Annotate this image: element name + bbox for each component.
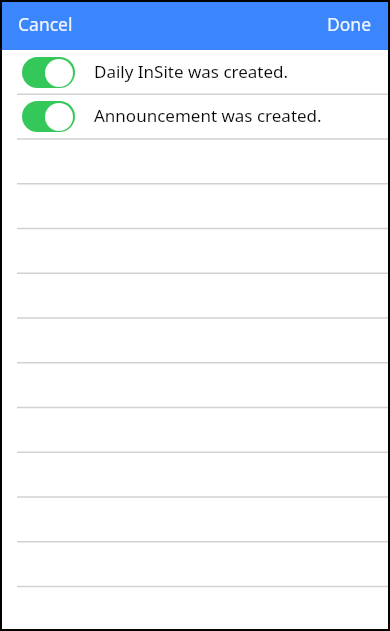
- button[interactable]: Done: [315, 6, 388, 46]
- staticText: Announcement was created.: [94, 104, 322, 127]
- button[interactable]: Cancel: [2, 6, 85, 46]
- button[interactable]: Announcement was created., switch, on: [2, 94, 388, 139]
- staticText: Done: [327, 12, 372, 36]
- staticText: Cancel: [18, 12, 73, 36]
- button[interactable]: Daily InSite was created., switch, on: [22, 57, 75, 88]
- staticText: Daily InSite was created.: [94, 60, 289, 83]
- button[interactable]: Daily InSite was created., switch, on: [2, 50, 388, 95]
- button[interactable]: Announcement was created., switch, on: [22, 101, 75, 132]
